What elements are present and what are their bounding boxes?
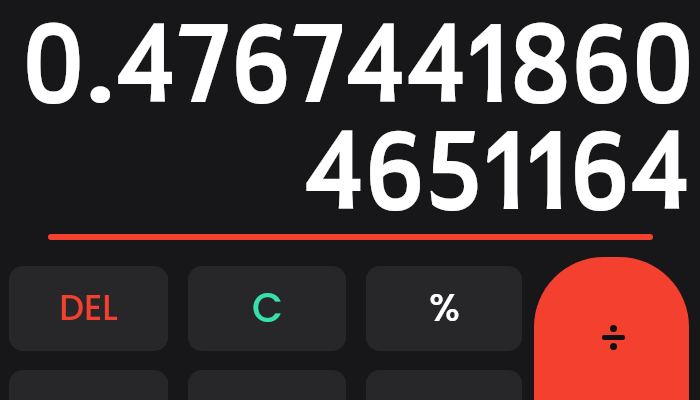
staticText: DEL <box>59 283 118 332</box>
staticText: % <box>429 280 460 335</box>
staticText: 0.4767441860 <box>0 20 695 400</box>
staticText: C <box>252 280 283 336</box>
button[interactable]: DEL <box>9 266 168 351</box>
button[interactable]: Divide <box>534 257 689 400</box>
button[interactable]: % <box>366 266 522 351</box>
button[interactable]: C <box>188 266 346 351</box>
staticText: 4651164 <box>0 127 691 400</box>
